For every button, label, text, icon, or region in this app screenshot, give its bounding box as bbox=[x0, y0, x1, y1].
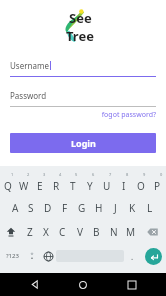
staticText: T bbox=[70, 179, 76, 193]
staticText: See bbox=[69, 9, 92, 27]
button[interactable]: 5 bbox=[64, 172, 81, 194]
staticText: M bbox=[126, 225, 136, 239]
staticText: N bbox=[110, 225, 118, 239]
button[interactable]: 7 bbox=[98, 172, 115, 194]
button[interactable]: 1 bbox=[0, 172, 16, 194]
staticText: 0 bbox=[160, 172, 163, 177]
button[interactable]: K bbox=[124, 197, 141, 218]
staticText: P bbox=[154, 179, 161, 193]
staticText: X bbox=[43, 225, 49, 239]
button[interactable]: Shift bbox=[0, 221, 22, 242]
button[interactable]: B bbox=[88, 221, 105, 242]
staticText: W bbox=[19, 179, 29, 193]
staticText: O bbox=[137, 179, 145, 193]
button[interactable]: H bbox=[90, 197, 107, 218]
button[interactable]: 0 bbox=[149, 172, 166, 194]
button[interactable]: 9 bbox=[132, 172, 149, 194]
staticText: Password bbox=[10, 90, 47, 101]
button[interactable]: M bbox=[122, 221, 139, 242]
staticText: V bbox=[77, 225, 83, 239]
button[interactable]: Login bbox=[10, 133, 156, 153]
button[interactable]: X bbox=[38, 221, 54, 242]
button[interactable]: D bbox=[39, 197, 56, 218]
button[interactable]: 6 bbox=[81, 172, 98, 194]
button[interactable]: A bbox=[7, 197, 23, 218]
staticText: fogot password? bbox=[101, 110, 156, 120]
staticText: 2 bbox=[27, 172, 30, 177]
staticText: L bbox=[147, 201, 153, 215]
button[interactable]: 2 bbox=[16, 172, 32, 194]
button[interactable]: F bbox=[56, 197, 73, 218]
button[interactable]: Z bbox=[22, 221, 38, 242]
staticText: U bbox=[103, 179, 111, 193]
button[interactable]: Comma bbox=[24, 245, 40, 267]
staticText: S bbox=[28, 201, 34, 215]
button[interactable]: Recent apps bbox=[117, 273, 147, 296]
button[interactable]: Backspace bbox=[139, 221, 166, 242]
staticText: E bbox=[37, 179, 43, 193]
button[interactable]: Change language bbox=[40, 245, 56, 267]
button[interactable]: 8 bbox=[115, 172, 132, 194]
button[interactable]: G bbox=[73, 197, 90, 218]
staticText: 7 bbox=[109, 172, 112, 177]
button[interactable]: Back bbox=[19, 273, 49, 296]
staticText: Y bbox=[87, 179, 93, 193]
button[interactable]: C bbox=[54, 221, 71, 242]
staticText: 8 bbox=[126, 172, 129, 177]
staticText: Login bbox=[71, 137, 96, 149]
staticText: 1 bbox=[11, 172, 14, 177]
button[interactable]: 3 bbox=[32, 172, 48, 194]
staticText: D bbox=[44, 201, 52, 215]
staticText: I bbox=[122, 179, 126, 193]
staticText: A bbox=[12, 201, 19, 215]
button[interactable]: N bbox=[105, 221, 122, 242]
button[interactable]: V bbox=[71, 221, 88, 242]
button[interactable]: L bbox=[141, 197, 158, 218]
button[interactable]: J bbox=[107, 197, 124, 218]
staticText: Username bbox=[10, 60, 49, 71]
staticText: J bbox=[114, 201, 117, 215]
staticText: R bbox=[53, 179, 60, 193]
staticText: C bbox=[59, 225, 66, 239]
staticText: Q bbox=[4, 179, 12, 193]
button[interactable]: Enter bbox=[145, 248, 162, 265]
staticText: 5 bbox=[75, 172, 78, 177]
staticText: K bbox=[129, 201, 136, 215]
button[interactable]: ?123 bbox=[0, 245, 24, 267]
staticText: 4 bbox=[59, 172, 62, 177]
staticText: 6 bbox=[92, 172, 95, 177]
button[interactable]: Home bbox=[68, 273, 98, 296]
button[interactable]: Period bbox=[124, 245, 140, 267]
staticText: 9 bbox=[143, 172, 146, 177]
staticText: H bbox=[95, 201, 103, 215]
staticText: . bbox=[131, 251, 134, 262]
staticText: F bbox=[62, 201, 68, 215]
staticText: G bbox=[78, 201, 86, 215]
staticText: Z bbox=[27, 225, 33, 239]
staticText: ?123 bbox=[6, 252, 19, 260]
staticText: 3 bbox=[43, 172, 46, 177]
staticText: Tree bbox=[66, 27, 94, 45]
button[interactable]: 4 bbox=[48, 172, 64, 194]
button[interactable]: S bbox=[23, 197, 39, 218]
button[interactable]: fogot password? bbox=[96, 110, 156, 120]
staticText: B bbox=[93, 225, 100, 239]
